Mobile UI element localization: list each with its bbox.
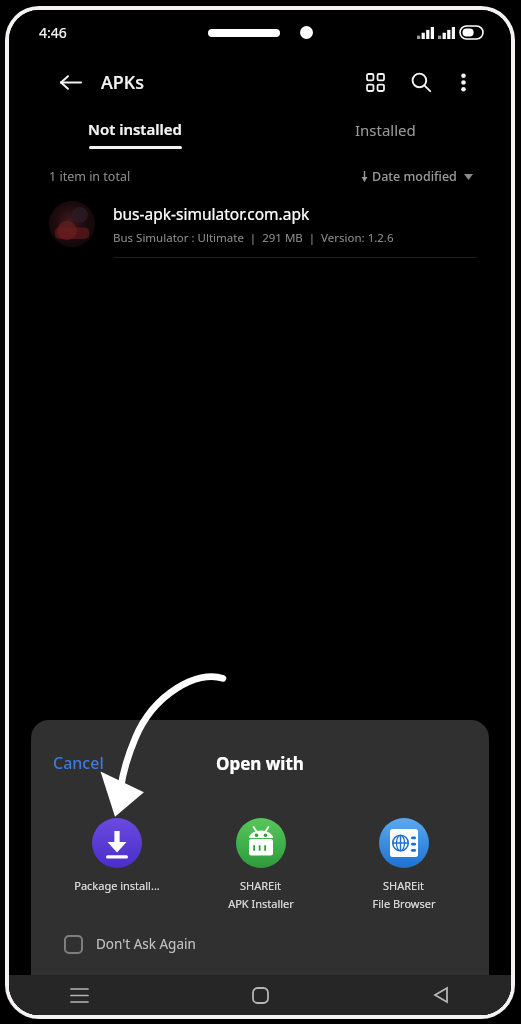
button[interactable]: More options xyxy=(447,66,479,98)
staticText: APK Installer xyxy=(228,896,294,911)
button[interactable]: Cancel xyxy=(31,748,114,778)
button[interactable]: Home xyxy=(240,975,280,1015)
button[interactable]: Date modified xyxy=(360,168,473,185)
staticText: APKs xyxy=(101,70,144,95)
staticText: SHAREit xyxy=(383,878,424,893)
button[interactable]: Search xyxy=(403,64,439,100)
staticText: Not installed xyxy=(88,119,182,139)
button[interactable]: Installed xyxy=(260,110,511,158)
button[interactable]: bus-apk-simulator.com.apk xyxy=(9,193,511,257)
staticText: 1 item in total xyxy=(49,168,131,185)
staticText: Date modified xyxy=(372,168,457,185)
staticText: Don't Ask Again xyxy=(96,935,196,953)
button[interactable]: Back xyxy=(421,975,461,1015)
staticText: Cancel xyxy=(53,752,104,774)
button[interactable]: Grid view xyxy=(357,64,393,100)
staticText: bus-apk-simulator.com.apk xyxy=(113,203,310,224)
staticText: SHAREit xyxy=(240,878,281,893)
button[interactable]: Not installed xyxy=(9,110,260,158)
button[interactable]: SHAREit xyxy=(332,814,475,915)
staticText: File Browser xyxy=(372,896,436,911)
staticText: Bus Simulator : Ultimate | 291 MB | Vers… xyxy=(113,230,394,246)
button[interactable]: SHAREit xyxy=(189,814,332,915)
staticText: Package install... xyxy=(74,878,160,893)
staticText: Open with xyxy=(216,752,304,775)
button[interactable]: Back xyxy=(53,65,87,99)
button[interactable]: Don't Ask Again xyxy=(31,927,489,975)
button[interactable]: Recents xyxy=(59,975,99,1015)
staticText: Installed xyxy=(355,120,416,140)
button[interactable]: Package install... xyxy=(45,814,189,897)
staticText: 4:46 xyxy=(39,23,67,42)
